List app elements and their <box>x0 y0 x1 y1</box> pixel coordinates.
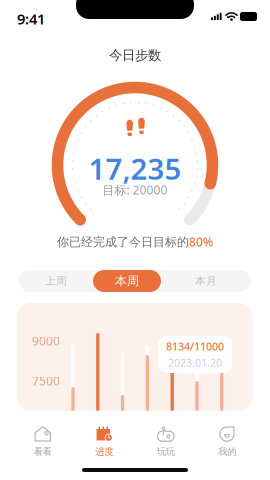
staticText: 9000 <box>32 333 60 349</box>
button[interactable]: 进度 <box>73 424 135 459</box>
staticText: 80% <box>189 234 213 250</box>
button[interactable]: 看看 <box>12 424 73 459</box>
button[interactable]: 我的 <box>196 424 258 459</box>
staticText: 本月 <box>195 274 217 287</box>
staticText: 2023.01.20 <box>168 355 222 370</box>
button[interactable]: 玩玩 <box>135 424 196 459</box>
button[interactable]: 本月 <box>161 270 251 292</box>
staticText: 上周 <box>45 274 67 287</box>
staticText: 你已经完成了今日目标的 <box>57 235 189 249</box>
button[interactable]: 本周 <box>93 270 161 292</box>
staticText: 目标: 20000 <box>102 182 167 198</box>
staticText: 进度 <box>95 446 113 457</box>
staticText: 17,235 <box>88 149 181 188</box>
button[interactable]: 上周 <box>19 270 93 292</box>
staticText: 本周 <box>115 274 139 288</box>
staticText: 9:41 <box>17 9 45 28</box>
staticText: 看看 <box>34 446 52 457</box>
staticText: 7500 <box>32 373 60 389</box>
staticText: 我的 <box>218 446 236 457</box>
staticText: 今日步数 <box>109 47 161 63</box>
staticText: 玩玩 <box>157 446 175 457</box>
staticText: 8134/11000 <box>166 339 224 353</box>
